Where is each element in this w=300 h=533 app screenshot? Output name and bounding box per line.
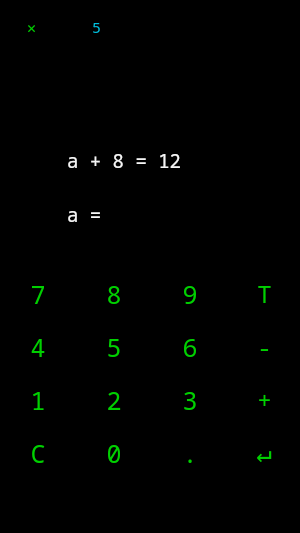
staticText: ✕ bbox=[27, 19, 37, 36]
button[interactable]: Minus bbox=[228, 320, 300, 373]
button[interactable]: a = bbox=[67, 199, 197, 231]
button[interactable]: Clear bbox=[0, 426, 76, 479]
staticText: 7 bbox=[30, 277, 46, 311]
staticText: 5 bbox=[92, 17, 102, 37]
staticText: C bbox=[30, 436, 46, 470]
staticText: 8 bbox=[106, 277, 122, 311]
staticText: - bbox=[257, 330, 272, 363]
staticText: 3 bbox=[182, 383, 198, 417]
button[interactable]: Enter bbox=[228, 426, 300, 479]
staticText: ↵ bbox=[256, 438, 272, 468]
staticText: . bbox=[182, 435, 198, 470]
staticText: 9 bbox=[182, 277, 198, 311]
button[interactable]: Remaining steps 5 bbox=[83, 13, 111, 41]
button[interactable]: Close bbox=[18, 13, 46, 41]
button[interactable]: 1 bbox=[0, 373, 76, 426]
button[interactable]: 8 bbox=[76, 267, 152, 320]
staticText: 5 bbox=[106, 330, 122, 364]
button[interactable]: Decimal point bbox=[152, 426, 228, 479]
button[interactable]: Plus bbox=[228, 373, 300, 426]
staticText: 4 bbox=[30, 330, 46, 364]
staticText: T bbox=[257, 277, 272, 310]
staticText: 6 bbox=[182, 330, 198, 364]
button[interactable]: 3 bbox=[152, 373, 228, 426]
staticText: 1 bbox=[30, 383, 46, 417]
button[interactable]: 4 bbox=[0, 320, 76, 373]
button[interactable]: 9 bbox=[152, 267, 228, 320]
button[interactable]: Toggle bbox=[228, 267, 300, 320]
button[interactable]: 2 bbox=[76, 373, 152, 426]
button[interactable]: 0 bbox=[76, 426, 152, 479]
button[interactable]: 6 bbox=[152, 320, 228, 373]
button[interactable]: 7 bbox=[0, 267, 76, 320]
staticText: 0 bbox=[106, 436, 122, 470]
staticText: a = bbox=[67, 202, 102, 228]
staticText: a + 8 = 12 bbox=[67, 148, 182, 174]
staticText: + bbox=[257, 383, 272, 416]
button[interactable]: 5 bbox=[76, 320, 152, 373]
staticText: 2 bbox=[106, 383, 122, 417]
